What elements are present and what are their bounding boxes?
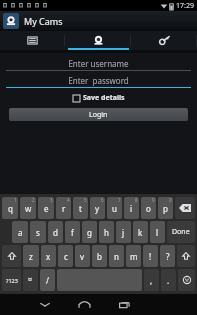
- button[interactable]: Shift: [2, 245, 21, 267]
- staticText: ,: [150, 275, 153, 286]
- button[interactable]: Emoji: [178, 269, 195, 291]
- button[interactable]: Shift: [177, 245, 195, 267]
- staticText: z: [29, 251, 33, 262]
- button[interactable]: m: [126, 245, 141, 267]
- button[interactable]: Backspace: [175, 197, 195, 219]
- button[interactable]: Enter username: [6, 57, 191, 71]
- button[interactable]: Hide keyboard: [31, 294, 58, 315]
- button[interactable]: f: [65, 221, 80, 243]
- staticText: 9: [152, 197, 155, 203]
- staticText: r: [62, 203, 66, 214]
- staticText: c: [64, 251, 68, 262]
- staticText: 3: [50, 197, 53, 203]
- button[interactable]: Done: [167, 221, 195, 243]
- staticText: 8: [135, 197, 138, 203]
- staticText: k: [138, 227, 143, 238]
- button[interactable]: Save details: [0, 93, 197, 103]
- staticText: u: [112, 203, 117, 214]
- staticText: p: [163, 203, 168, 214]
- staticText: n: [114, 251, 119, 262]
- button[interactable]: b: [92, 245, 107, 267]
- button[interactable]: d: [48, 221, 63, 243]
- staticText: ¤: [28, 275, 33, 285]
- button[interactable]: Enter password: [6, 74, 191, 88]
- staticText: My Cams: [24, 15, 63, 27]
- staticText: t: [79, 203, 82, 214]
- button[interactable]: p: [158, 197, 173, 219]
- staticText: Done: [172, 227, 190, 237]
- button[interactable]: x: [41, 245, 56, 267]
- staticText: 2: [32, 197, 35, 203]
- button[interactable]: Login: [9, 108, 188, 121]
- button[interactable]: t: [73, 197, 88, 219]
- button[interactable]: u: [107, 197, 122, 219]
- button[interactable]: c: [58, 245, 73, 267]
- staticText: 5: [84, 197, 87, 203]
- button[interactable]: Live view: [65, 31, 131, 50]
- button[interactable]: g: [82, 221, 97, 243]
- staticText: 0: [169, 197, 172, 203]
- staticText: l: [156, 227, 159, 238]
- staticText: i: [130, 203, 133, 214]
- button[interactable]: v: [75, 245, 90, 267]
- button[interactable]: Settings: [131, 31, 197, 50]
- staticText: h: [104, 227, 109, 238]
- button[interactable]: i: [124, 197, 139, 219]
- button[interactable]: ?123: [2, 269, 21, 291]
- staticText: g: [87, 227, 92, 238]
- staticText: a: [18, 227, 23, 238]
- button[interactable]: r: [56, 197, 71, 219]
- button[interactable]: Recent apps: [111, 294, 138, 315]
- staticText: Login: [89, 110, 108, 120]
- staticText: ?123: [6, 277, 18, 284]
- staticText: o: [146, 203, 151, 214]
- button[interactable]: Camera list: [0, 31, 65, 50]
- button[interactable]: s: [30, 221, 46, 243]
- staticText: /: [46, 275, 49, 286]
- button[interactable]: ?: [160, 245, 175, 267]
- staticText: f: [71, 227, 74, 238]
- staticText: s: [36, 227, 40, 238]
- staticText: Enter password: [68, 75, 129, 86]
- staticText: ?: [166, 251, 170, 262]
- button[interactable]: n: [109, 245, 124, 267]
- button[interactable]: z: [23, 245, 39, 267]
- button[interactable]: q: [2, 197, 18, 219]
- button[interactable]: e: [38, 197, 54, 219]
- button[interactable]: y: [90, 197, 105, 219]
- staticText: q: [8, 203, 13, 214]
- staticText: 17:29: [176, 1, 194, 11]
- staticText: 4: [67, 197, 70, 203]
- button[interactable]: .: [161, 269, 176, 291]
- staticText: !: [149, 251, 152, 262]
- staticText: .: [167, 275, 170, 286]
- staticText: Save details: [83, 93, 125, 103]
- button[interactable]: j: [116, 221, 131, 243]
- button[interactable]: !: [143, 245, 158, 267]
- staticText: x: [46, 251, 51, 262]
- button[interactable]: o: [141, 197, 156, 219]
- staticText: 1: [14, 197, 17, 203]
- staticText: v: [80, 251, 85, 262]
- staticText: j: [122, 227, 125, 238]
- button[interactable]: a: [12, 221, 28, 243]
- button[interactable]: /: [40, 269, 55, 291]
- staticText: 6: [101, 197, 104, 203]
- staticText: e: [44, 203, 49, 214]
- button[interactable]: ,: [144, 269, 159, 291]
- staticText: b: [97, 251, 102, 262]
- button[interactable]: k: [133, 221, 148, 243]
- staticText: 7: [118, 197, 121, 203]
- button[interactable]: Home: [71, 294, 98, 315]
- button[interactable]: l: [150, 221, 165, 243]
- staticText: d: [53, 227, 58, 238]
- staticText: m: [130, 251, 138, 262]
- staticText: w: [25, 203, 32, 214]
- button[interactable]: App icon: [3, 13, 19, 29]
- button[interactable]: w: [20, 197, 36, 219]
- staticText: Enter username: [68, 58, 129, 69]
- button[interactable]: h: [99, 221, 114, 243]
- staticText: y: [95, 203, 100, 214]
- button[interactable]: Language: [23, 269, 38, 291]
